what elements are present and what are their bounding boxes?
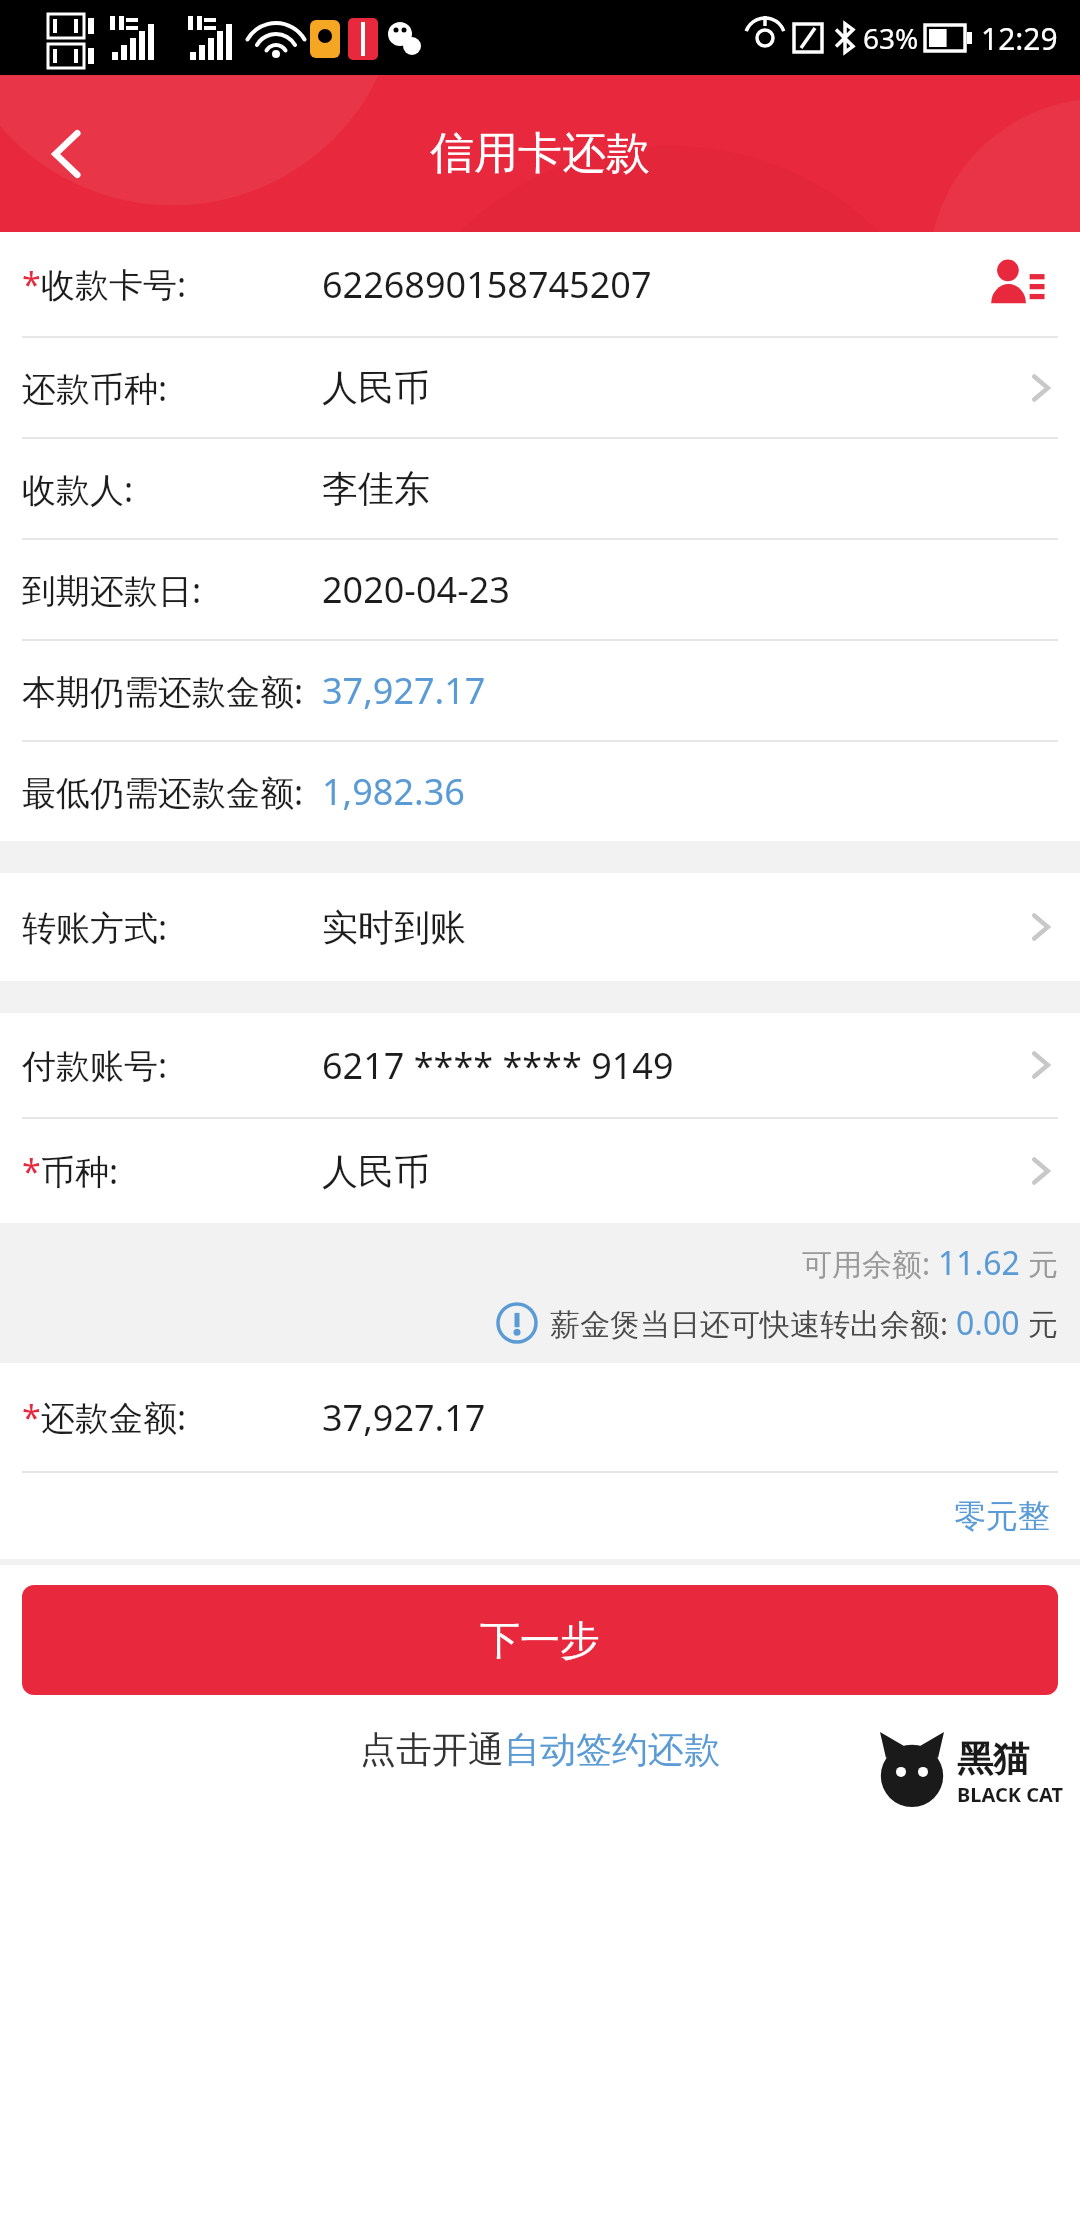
- staticText: 人民币: [322, 365, 430, 410]
- staticText: 还款币种:: [22, 365, 168, 411]
- staticText: *: [22, 1394, 41, 1440]
- staticText: 0.00: [956, 1301, 1020, 1345]
- staticText: 元: [1020, 1243, 1058, 1284]
- staticText: 自动签约还款: [504, 1727, 720, 1772]
- staticText: 还款金额:: [41, 1394, 187, 1440]
- button[interactable]: 本期仍需还款金额:: [0, 641, 1080, 740]
- staticText: 人民币: [322, 1149, 430, 1194]
- button[interactable]: 付款账号:: [0, 1013, 1080, 1117]
- staticText: 信用卡还款: [430, 126, 650, 181]
- staticText: 37,927.17: [322, 666, 486, 715]
- staticText: 付款账号:: [22, 1042, 168, 1088]
- staticText: *: [22, 1148, 41, 1194]
- button[interactable]: *: [0, 1119, 1080, 1223]
- staticText: 点击开通: [360, 1727, 504, 1772]
- staticText: 37,927.17: [322, 1393, 486, 1442]
- staticText: 63%: [863, 19, 919, 57]
- staticText: 李佳东: [322, 466, 430, 511]
- button[interactable]: 点击开通: [360, 1727, 720, 1772]
- staticText: 12:29: [981, 18, 1058, 59]
- staticText: *: [22, 261, 41, 307]
- staticText: 元: [1020, 1303, 1058, 1344]
- staticText: BLACK CAT: [957, 1781, 1064, 1808]
- staticText: 1,982.36: [322, 767, 465, 816]
- staticText: 收款人:: [22, 466, 134, 512]
- staticText: 薪金煲当日还可快速转出余额:: [550, 1303, 956, 1344]
- staticText: 零元整: [954, 1496, 1050, 1536]
- staticText: 本期仍需还款金额:: [22, 668, 304, 714]
- button[interactable]: 下一步: [22, 1585, 1058, 1695]
- staticText: 币种:: [41, 1148, 119, 1194]
- staticText: 6217 **** **** 9149: [322, 1041, 674, 1090]
- staticText: 收款卡号:: [41, 261, 187, 307]
- staticText: 6226890158745207: [322, 260, 652, 309]
- staticText: 最低仍需还款金额:: [22, 769, 304, 815]
- button[interactable]: 最低仍需还款金额:: [0, 742, 1080, 841]
- button[interactable]: Choose contact: [974, 242, 1058, 326]
- button[interactable]: *: [0, 232, 1080, 336]
- button[interactable]: Back: [20, 106, 116, 202]
- button[interactable]: 收款人:: [0, 439, 1080, 538]
- button[interactable]: 零元整: [946, 1488, 1058, 1544]
- staticText: 可用余额:: [802, 1243, 938, 1284]
- staticText: 实时到账: [322, 905, 466, 950]
- button[interactable]: *: [0, 1363, 1080, 1471]
- staticText: 到期还款日:: [22, 567, 202, 613]
- button[interactable]: 到期还款日:: [0, 540, 1080, 639]
- staticText: 转账方式:: [22, 904, 168, 950]
- staticText: 2020-04-23: [322, 565, 510, 614]
- staticText: 黑猫: [957, 1736, 1029, 1781]
- button[interactable]: 转账方式:: [0, 873, 1080, 981]
- staticText: 11.62: [938, 1241, 1020, 1285]
- button[interactable]: 还款币种:: [0, 338, 1080, 437]
- staticText: 下一步: [480, 1615, 600, 1665]
